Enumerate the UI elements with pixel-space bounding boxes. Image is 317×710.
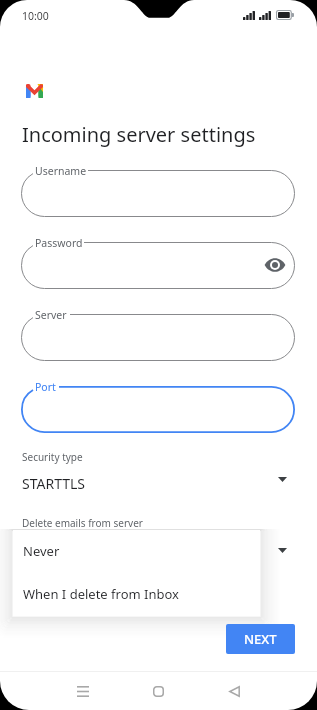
button[interactable]: Show password (263, 253, 287, 277)
staticText: 10:00 (22, 9, 49, 23)
button[interactable]: STARTTLS (14, 468, 298, 498)
button[interactable]: Port (21, 386, 295, 433)
staticText: When I delete from Inbox (23, 585, 179, 603)
button[interactable]: NEXT (226, 624, 295, 654)
staticText: Password (35, 236, 83, 250)
staticText: Port (35, 380, 56, 394)
button[interactable]: When I delete from Inbox (13, 572, 260, 615)
button[interactable]: Never (13, 530, 260, 572)
button[interactable]: Back (196, 672, 272, 710)
staticText: NEXT (244, 630, 277, 648)
button[interactable]: Server (21, 314, 295, 361)
staticText: Incoming server settings (22, 121, 256, 148)
button[interactable]: Recents (45, 672, 120, 710)
button[interactable]: Home (120, 672, 196, 710)
staticText: STARTTLS (22, 474, 86, 493)
staticText: Delete emails from server (22, 516, 143, 530)
staticText: Server (35, 308, 67, 322)
button[interactable]: Username (21, 170, 295, 217)
staticText: Never (23, 542, 60, 560)
staticText: Security type (22, 450, 83, 464)
button[interactable]: Password (21, 242, 295, 289)
staticText: Username (35, 164, 87, 178)
button[interactable]: Expand delete emails from server (272, 540, 292, 560)
